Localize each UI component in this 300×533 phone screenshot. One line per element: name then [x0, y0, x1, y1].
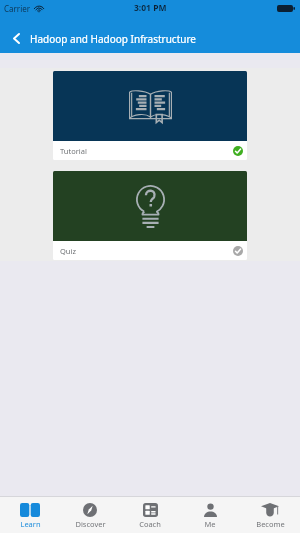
- staticText: Become: [256, 519, 285, 529]
- staticText: Tutorial: [60, 146, 87, 156]
- staticText: Discover: [75, 519, 106, 529]
- staticText: 3:01 PM: [134, 2, 167, 14]
- button[interactable]: Learn: [0, 497, 60, 533]
- button[interactable]: Coach: [120, 497, 180, 533]
- staticText: Coach: [139, 519, 161, 529]
- staticText: Hadoop and Hadoop Infrastructure: [30, 32, 196, 46]
- staticText: Me: [204, 519, 216, 529]
- staticText: Carrier: [4, 3, 31, 14]
- button[interactable]: Me: [180, 497, 240, 533]
- button[interactable]: Tutorial: [53, 71, 247, 160]
- button[interactable]: Become: [240, 497, 300, 533]
- button[interactable]: Discover: [60, 497, 120, 533]
- button[interactable]: Back: [0, 23, 28, 51]
- staticText: Learn: [20, 519, 41, 529]
- button[interactable]: Quiz: [53, 171, 247, 260]
- staticText: Quiz: [60, 246, 76, 256]
